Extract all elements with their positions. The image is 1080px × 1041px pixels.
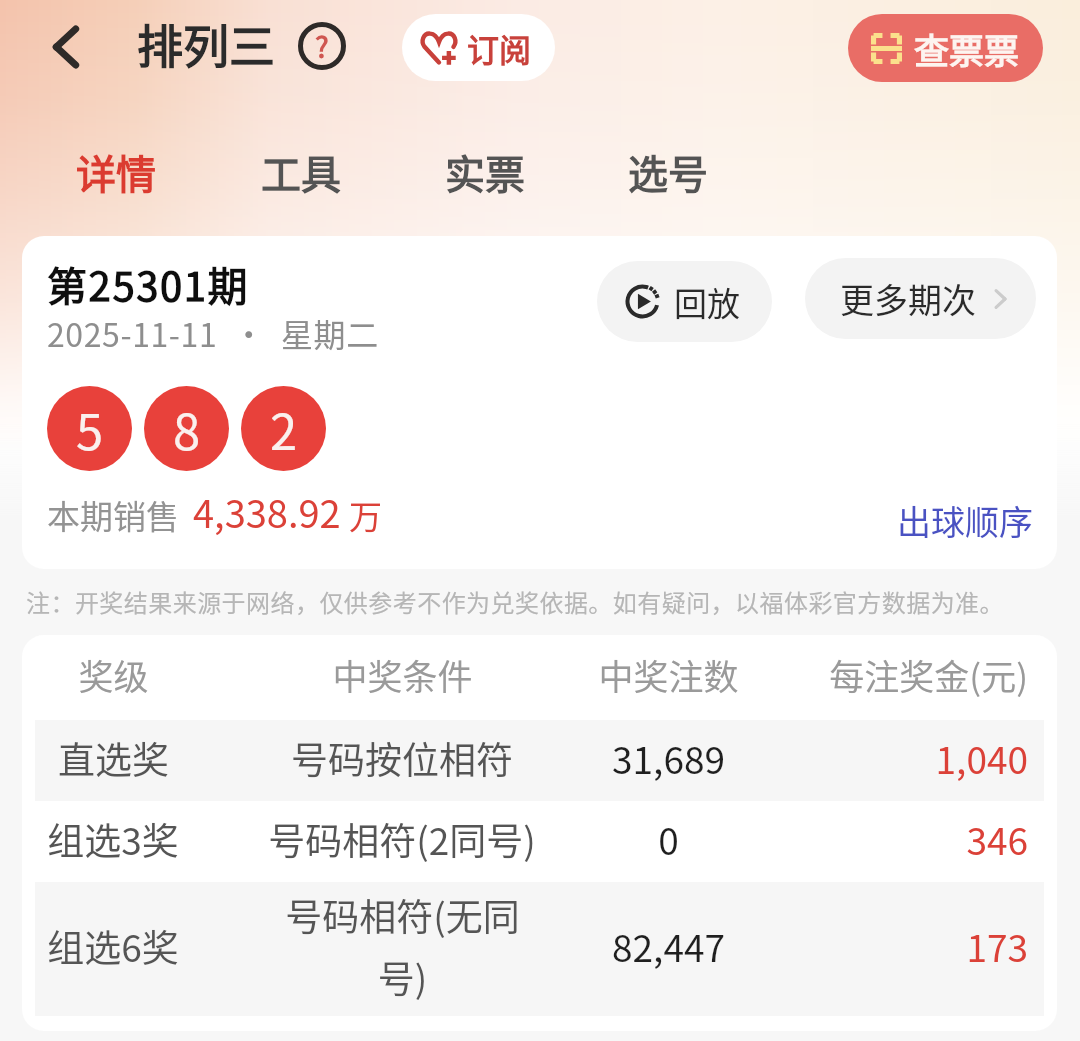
- button[interactable]: 组选3奖: [35, 801, 1044, 882]
- staticText: 号码相符(无同 号): [285, 888, 520, 1004]
- staticText: 4,338.92: [193, 484, 341, 539]
- staticText: 详情: [76, 143, 156, 201]
- staticText: 实票: [445, 143, 525, 201]
- button[interactable]: 直选奖: [35, 720, 1044, 801]
- button[interactable]: 回放: [597, 261, 772, 342]
- staticText: 31,689: [612, 731, 725, 785]
- staticText: 选号: [628, 143, 708, 201]
- staticText: 注：开奖结果来源于网络，仅供参考不作为兑奖依据。如有疑问，以福体彩官方数据为准。: [26, 584, 1004, 619]
- staticText: 173: [966, 919, 1028, 973]
- button[interactable]: 出球顺序: [889, 488, 1041, 553]
- staticText: 号码按位相符: [291, 731, 513, 785]
- button[interactable]: 查票票: [848, 14, 1043, 82]
- staticText: 0: [658, 812, 679, 866]
- staticText: 订阅: [467, 25, 532, 71]
- staticText: 直选奖: [58, 731, 169, 785]
- staticText: 5: [76, 393, 104, 464]
- button[interactable]: 选号: [606, 133, 730, 211]
- staticText: 组选6奖: [47, 919, 179, 973]
- staticText: 回放: [674, 278, 740, 326]
- staticText: 万: [349, 491, 382, 539]
- button[interactable]: 详情: [54, 133, 178, 211]
- button[interactable]: 组选6奖: [35, 882, 1044, 1016]
- staticText: 查票票: [914, 23, 1020, 74]
- staticText: 每注奖金(元): [829, 649, 1028, 700]
- staticText: 中奖条件: [332, 649, 473, 700]
- staticText: 346: [966, 812, 1028, 866]
- staticText: 排列三: [137, 10, 275, 77]
- staticText: 8: [173, 393, 201, 464]
- staticText: 2: [270, 393, 298, 464]
- button[interactable]: 实票: [423, 133, 547, 211]
- button[interactable]: Back: [36, 17, 96, 77]
- button[interactable]: 奖级: [35, 635, 1044, 720]
- staticText: 更多期次: [840, 274, 976, 323]
- staticText: 出球顺序: [897, 496, 1033, 545]
- staticText: 组选3奖: [47, 812, 179, 866]
- staticText: 本期销售: [47, 491, 179, 539]
- staticText: 第25301期: [47, 255, 250, 313]
- button[interactable]: 更多期次: [805, 258, 1036, 339]
- staticText: 中奖注数: [598, 649, 739, 700]
- button[interactable]: Help: [294, 18, 350, 74]
- staticText: 奖级: [78, 649, 149, 700]
- staticText: 工具: [261, 143, 341, 201]
- staticText: 号码相符(2同号): [268, 812, 536, 866]
- staticText: 2025-11-11 · 星期二: [47, 310, 379, 356]
- staticText: 1,040: [935, 731, 1028, 785]
- button[interactable]: 订阅: [402, 14, 555, 81]
- staticText: ?: [315, 24, 329, 66]
- staticText: 82,447: [612, 919, 725, 973]
- button[interactable]: 工具: [239, 133, 363, 211]
